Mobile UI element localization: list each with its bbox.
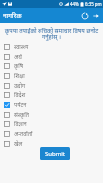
staticText: 44%	[70, 1, 79, 7]
staticText: 6:35 pm	[85, 1, 102, 7]
button[interactable]: विज्ञान	[0, 119, 103, 129]
staticText: Submit	[45, 150, 66, 158]
staticText: विदेश	[14, 91, 26, 99]
button[interactable]: Refresh	[80, 11, 90, 21]
button[interactable]: उद्योग	[0, 81, 103, 91]
button[interactable]: संस्कृति	[0, 110, 103, 120]
button[interactable]: Forward	[91, 11, 101, 21]
staticText: कृषि	[14, 62, 23, 70]
staticText: उद्योग	[14, 82, 26, 90]
staticText: नागरिक	[3, 11, 22, 20]
staticText: गर्नुहोस् ।	[0, 33, 103, 41]
button[interactable]: कृषि	[0, 61, 103, 71]
staticText: विज्ञान	[14, 120, 27, 128]
staticText: स्वास्थ्य	[14, 43, 29, 51]
staticText: कृपया तपाईंको रुचिको समाचार विषय छनोट	[0, 27, 103, 35]
staticText: संस्कृति	[14, 111, 29, 119]
button[interactable]: खेल	[0, 139, 103, 149]
button[interactable]: पर्यटन	[0, 100, 103, 110]
button[interactable]: शिक्षा	[0, 71, 103, 81]
button[interactable]: स्वास्थ्य	[0, 42, 103, 52]
staticText: शिक्षा	[14, 72, 25, 80]
staticText: खेल	[14, 140, 23, 148]
staticText: अन्तर्वार्ता	[14, 130, 33, 138]
staticText: अर्थ	[14, 53, 22, 61]
button[interactable]: Submit	[40, 147, 70, 160]
button[interactable]: अर्थ	[0, 52, 103, 62]
button[interactable]: विदेश	[0, 90, 103, 100]
staticText: पर्यटन	[14, 101, 27, 109]
button[interactable]: अन्तर्वार्ता	[0, 129, 103, 139]
